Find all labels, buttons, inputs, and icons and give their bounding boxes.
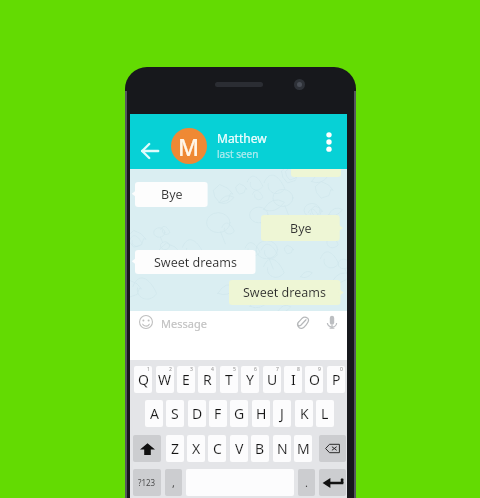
staticText: A [150, 404, 159, 423]
button[interactable]: Sweet dreams [224, 280, 345, 305]
button[interactable]: E [177, 366, 195, 393]
staticText: Sweet dreams [243, 284, 326, 301]
staticText: L [321, 404, 329, 423]
staticText: H [256, 404, 267, 423]
staticText: M [178, 131, 200, 162]
staticText: Q [138, 370, 149, 389]
button[interactable]: Backspace [319, 435, 346, 462]
button[interactable]: Symbols [133, 469, 161, 496]
button[interactable]: Comma [165, 469, 182, 496]
staticText: I [291, 370, 296, 389]
staticText: T [225, 370, 233, 389]
staticText: Bye [290, 220, 312, 237]
staticText: , [172, 475, 175, 490]
button[interactable]: U [263, 366, 281, 393]
staticText: B [255, 439, 265, 458]
button[interactable]: Bye [130, 182, 213, 207]
button[interactable]: Z [166, 435, 184, 462]
staticText: Message [161, 316, 207, 331]
button[interactable]: Shift [133, 435, 161, 462]
button[interactable]: Matthew [217, 130, 267, 161]
staticText: 9 [318, 366, 321, 373]
button[interactable]: B [251, 435, 269, 462]
staticText: 8 [297, 366, 300, 373]
button[interactable]: Sweet dreams [130, 250, 261, 274]
button[interactable]: Contact avatar [171, 128, 207, 164]
button[interactable]: Record voice message [321, 311, 343, 333]
button[interactable]: Attach file [292, 312, 314, 334]
staticText: K [300, 404, 309, 423]
staticText: Y [246, 370, 254, 389]
staticText: 6 [254, 366, 257, 373]
staticText: 1 [147, 366, 150, 373]
button[interactable]: Back [138, 139, 162, 163]
staticText: 2 [169, 366, 172, 373]
button[interactable]: J [273, 400, 291, 427]
staticText: Bye [161, 186, 183, 203]
button[interactable]: O [305, 366, 323, 393]
button[interactable]: H [252, 400, 270, 427]
button[interactable]: W [156, 366, 174, 393]
staticText: E [182, 370, 190, 389]
button[interactable]: L [316, 400, 334, 427]
button[interactable]: M [294, 435, 312, 462]
staticText: 5 [233, 366, 236, 373]
staticText: U [267, 370, 278, 389]
staticText: . [305, 475, 308, 490]
button[interactable]: N [273, 435, 291, 462]
staticText: S [171, 404, 179, 423]
staticText: F [214, 404, 222, 423]
button[interactable]: I [284, 366, 302, 393]
staticText: ?123 [138, 477, 156, 488]
staticText: P [332, 370, 341, 389]
staticText: G [234, 404, 245, 423]
staticText: M [297, 439, 310, 458]
staticText: C [213, 439, 222, 458]
staticText: Sweet dreams [154, 254, 237, 271]
button[interactable]: Enter [319, 469, 346, 496]
staticText: 4 [211, 366, 214, 373]
staticText: last seen [217, 147, 259, 161]
staticText: W [158, 370, 172, 389]
staticText: V [235, 439, 244, 458]
staticText: R [203, 370, 212, 389]
staticText: 0 [340, 366, 343, 373]
button[interactable]: K [295, 400, 313, 427]
button[interactable]: Y [241, 366, 259, 393]
staticText: 7 [276, 366, 279, 373]
staticText: Z [171, 439, 180, 458]
staticText: O [309, 370, 320, 389]
staticText: D [192, 404, 203, 423]
button[interactable]: Q [134, 366, 152, 393]
button[interactable]: Bye [256, 215, 345, 241]
button[interactable]: V [230, 435, 248, 462]
button[interactable]: Emoji [135, 311, 157, 333]
button[interactable]: C [208, 435, 226, 462]
button[interactable]: G [230, 400, 248, 427]
staticText: Matthew [217, 130, 267, 146]
staticText: J [280, 404, 284, 423]
staticText: N [277, 439, 288, 458]
button[interactable]: R [198, 366, 216, 393]
button[interactable]: D [188, 400, 206, 427]
button[interactable]: P [327, 366, 345, 393]
staticText: X [192, 439, 201, 458]
button[interactable]: Period [298, 469, 315, 496]
staticText: 3 [190, 366, 193, 373]
button[interactable]: X [187, 435, 205, 462]
button[interactable]: T [220, 366, 238, 393]
button[interactable]: A [145, 400, 163, 427]
button[interactable]: F [209, 400, 227, 427]
button[interactable]: More options [317, 130, 341, 154]
button[interactable]: S [166, 400, 184, 427]
